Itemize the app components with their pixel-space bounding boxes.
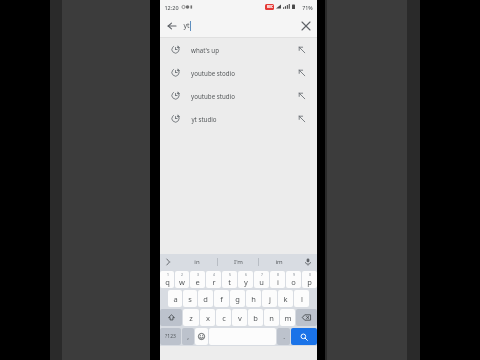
staticText: h (251, 294, 256, 304)
staticText: y (244, 277, 248, 287)
button[interactable]: n (264, 309, 279, 326)
staticText: 5 (229, 272, 231, 277)
button[interactable]: 7 (254, 271, 269, 288)
button[interactable]: yt (183, 14, 294, 37)
button[interactable]: Search (291, 328, 317, 345)
button[interactable]: ?123 (160, 328, 181, 345)
button[interactable]: 2 (175, 271, 189, 288)
button[interactable]: j (262, 290, 277, 307)
button[interactable]: youtube studio (160, 84, 317, 107)
staticText: d (203, 294, 208, 304)
staticText: , (187, 332, 189, 341)
button[interactable]: l (294, 290, 309, 307)
staticText: I'm (234, 258, 243, 266)
button[interactable]: yt studio (160, 107, 317, 130)
button[interactable]: 8 (270, 271, 285, 288)
staticText: yt studio (191, 115, 217, 123)
staticText: m (284, 313, 292, 323)
button[interactable]: x (200, 309, 215, 326)
staticText: q (165, 277, 170, 287)
button[interactable]: f (214, 290, 229, 307)
staticText: youtube studio (191, 92, 235, 100)
staticText: . (283, 332, 285, 341)
button[interactable]: . (277, 328, 290, 345)
button[interactable]: im (259, 254, 299, 270)
staticText: 3 (197, 272, 199, 277)
button[interactable]: 1 (160, 271, 174, 288)
button[interactable]: h (246, 290, 261, 307)
staticText: b (253, 313, 258, 323)
staticText: REC (267, 5, 273, 9)
button[interactable]: m (280, 309, 295, 326)
button[interactable]: 9 (286, 271, 301, 288)
staticText: 2 (181, 272, 183, 277)
button[interactable]: 5 (222, 271, 237, 288)
staticText: n (269, 313, 274, 323)
staticText: o (291, 277, 296, 287)
button[interactable]: Emoji (195, 328, 208, 345)
button[interactable]: 4 (206, 271, 221, 288)
staticText: in (194, 258, 200, 266)
button[interactable]: 6 (238, 271, 253, 288)
button[interactable]: Voice input (299, 254, 317, 270)
staticText: youtube stodio (191, 69, 235, 77)
staticText: 6 (245, 272, 247, 277)
button[interactable]: Clear (294, 14, 317, 37)
button[interactable]: , (182, 328, 194, 345)
staticText: a (173, 294, 178, 304)
staticText: x (206, 313, 210, 323)
staticText: 8 (277, 272, 279, 277)
staticText: i (277, 277, 279, 287)
button[interactable]: k (278, 290, 293, 307)
staticText: v (238, 313, 242, 323)
button[interactable]: 0 (302, 271, 317, 288)
staticText: p (307, 277, 312, 287)
button[interactable]: b (248, 309, 263, 326)
staticText: k (283, 294, 288, 304)
button[interactable]: More suggestions (160, 254, 176, 270)
staticText: f (220, 294, 223, 304)
staticText: 4 (213, 272, 215, 277)
staticText: ?123 (165, 333, 176, 340)
button[interactable]: Shift (160, 309, 182, 326)
staticText: l (301, 294, 303, 304)
button[interactable]: a (168, 290, 182, 307)
button[interactable]: s (183, 290, 197, 307)
button[interactable]: z (183, 309, 199, 326)
button[interactable]: I'm (218, 254, 258, 270)
staticText: w (179, 277, 185, 287)
staticText: yt (183, 21, 190, 31)
staticText: r (212, 277, 216, 287)
button[interactable]: g (230, 290, 245, 307)
staticText: s (188, 294, 192, 304)
staticText: 9 (293, 272, 295, 277)
button[interactable]: c (216, 309, 231, 326)
staticText: 12:20 (164, 4, 179, 11)
staticText: c (222, 313, 226, 323)
staticText: im (275, 258, 283, 266)
button[interactable]: 3 (190, 271, 205, 288)
button[interactable]: what's up (160, 38, 317, 61)
staticText: j (269, 294, 271, 304)
button[interactable]: Backspace (296, 309, 317, 326)
staticText: what's up (191, 46, 219, 54)
button[interactable]: d (198, 290, 213, 307)
staticText: t (228, 277, 231, 287)
staticText: 7 (261, 272, 263, 277)
button[interactable]: youtube stodio (160, 61, 317, 84)
staticText: e (195, 277, 200, 287)
staticText: g (235, 294, 240, 304)
button[interactable]: v (232, 309, 247, 326)
button[interactable]: in (176, 254, 217, 270)
staticText: 0 (309, 272, 311, 277)
staticText: z (189, 313, 193, 323)
staticText: 71% (302, 4, 313, 11)
staticText: 1 (167, 272, 169, 277)
button[interactable]: Back (160, 14, 183, 37)
staticText: u (259, 277, 264, 287)
